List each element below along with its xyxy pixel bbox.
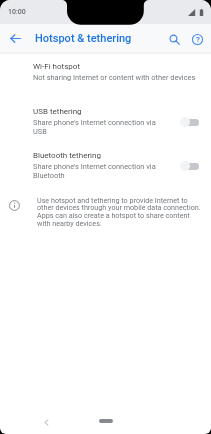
button[interactable]: Home xyxy=(99,419,113,423)
button[interactable]: Toggle USB tethering xyxy=(176,115,200,129)
button[interactable]: Help xyxy=(186,28,209,51)
staticText: Bluetooth tethering xyxy=(33,151,101,160)
staticText: USB tethering xyxy=(33,107,82,116)
staticText: Wi-Fi hotspot xyxy=(33,62,80,71)
staticText: Not sharing Internet or content with oth… xyxy=(33,73,196,82)
staticText: 10:00 xyxy=(8,8,26,16)
button[interactable]: Bluetooth tethering xyxy=(0,147,211,192)
button[interactable]: Wi-Fi hotspot xyxy=(0,58,211,103)
button[interactable]: Search xyxy=(163,28,186,51)
button[interactable]: USB tethering xyxy=(0,103,211,148)
staticText: Use hotspot and tethering to provide Int… xyxy=(37,196,202,228)
button[interactable]: Toggle Bluetooth tethering xyxy=(176,159,200,173)
staticText: Hotspot & tethering xyxy=(35,32,132,45)
button[interactable]: Navigate up xyxy=(3,26,27,50)
staticText: Share phone's Internet connection via Bl… xyxy=(33,162,161,179)
button[interactable]: Back xyxy=(36,412,56,432)
staticText: Share phone's Internet connection via US… xyxy=(33,118,161,135)
staticText: ? xyxy=(196,35,200,44)
